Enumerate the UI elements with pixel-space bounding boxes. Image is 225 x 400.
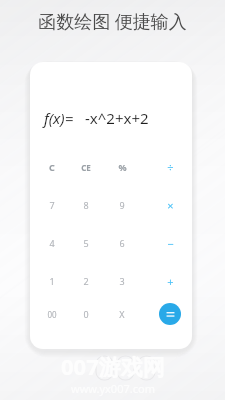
button[interactable]: %	[105, 152, 139, 182]
staticText: 00	[47, 309, 57, 320]
button[interactable]: 2	[69, 266, 103, 296]
staticText: 函数绘图 便捷输入	[38, 9, 187, 34]
button[interactable]: 00	[35, 299, 69, 329]
button[interactable]: 0	[69, 299, 103, 329]
button[interactable]: −	[153, 228, 187, 258]
staticText: 007游戏网	[61, 351, 165, 381]
staticText: %	[118, 161, 127, 173]
button[interactable]: 5	[69, 228, 103, 258]
staticText: ×	[167, 198, 174, 213]
button[interactable]: ÷	[153, 152, 187, 182]
staticText: X	[119, 308, 125, 320]
staticText: 6	[119, 237, 125, 249]
staticText: CE	[81, 162, 91, 173]
button[interactable]: 9	[105, 190, 139, 220]
button[interactable]: C	[35, 152, 69, 182]
staticText: 4	[49, 237, 55, 249]
button[interactable]: 7	[35, 190, 69, 220]
staticText: 3	[119, 275, 125, 287]
button[interactable]: ×	[153, 190, 187, 220]
staticText: ÷	[167, 160, 174, 175]
staticText: −	[167, 236, 174, 251]
button[interactable]: 3	[105, 266, 139, 296]
staticText: 2	[83, 275, 89, 287]
button[interactable]: CE	[69, 152, 103, 182]
button[interactable]: Equals	[159, 303, 181, 325]
staticText: 1	[49, 275, 55, 287]
staticText: C	[49, 161, 55, 173]
staticText: 0	[83, 308, 89, 320]
staticText: -x^2+x+2	[85, 108, 149, 128]
button[interactable]: 4	[35, 228, 69, 258]
staticText: 8	[83, 199, 89, 211]
button[interactable]: 8	[69, 190, 103, 220]
button[interactable]: 6	[105, 228, 139, 258]
button[interactable]: f(x)=	[30, 108, 192, 128]
button[interactable]: X	[105, 299, 139, 329]
staticText: +	[167, 274, 174, 289]
staticText: 5	[83, 237, 89, 249]
button[interactable]: 1	[35, 266, 69, 296]
staticText: f(x)=	[44, 108, 74, 128]
staticText: 9	[119, 199, 125, 211]
button[interactable]: +	[153, 266, 187, 296]
staticText: 7	[49, 199, 55, 211]
